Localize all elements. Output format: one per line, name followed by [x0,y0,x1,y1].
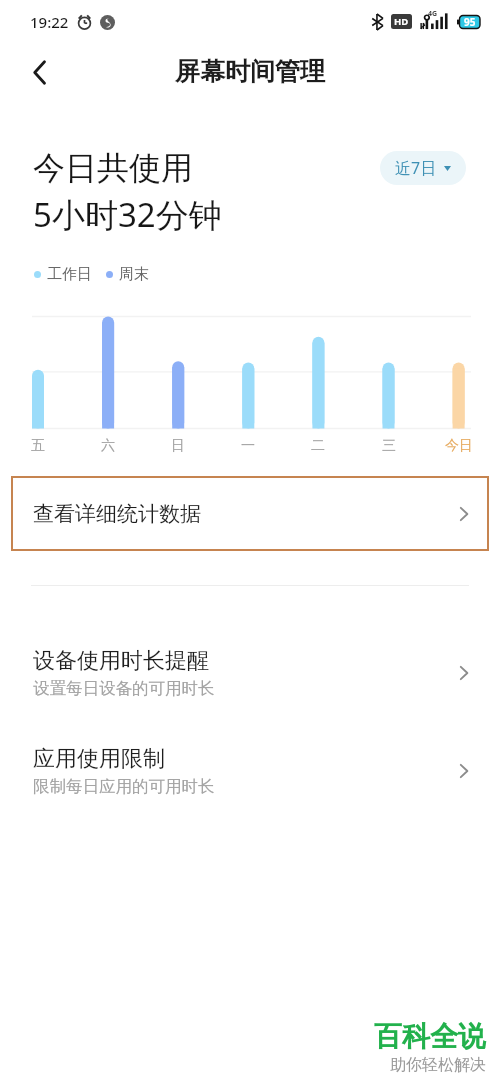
staticText: 4G [428,9,438,19]
staticText: 查看详细统计数据 [33,501,201,527]
staticText: 五 [31,437,45,455]
staticText: 百科全说 [374,1019,486,1054]
staticText: 三 [382,437,396,455]
staticText: 5小时32分钟 [33,192,222,237]
staticText: 今日 [445,437,473,455]
staticText: 近7日 [395,157,437,179]
staticText: 助你轻松解决 [390,1055,486,1075]
staticText: 一 [241,437,255,455]
button[interactable]: 查看详细统计数据 [11,476,489,551]
staticText: 应用使用限制 [33,745,165,773]
staticText: 今日共使用 [33,148,193,188]
staticText: 日 [171,437,185,455]
staticText: 95 [464,15,476,29]
staticText: HD [394,15,409,28]
button[interactable]: 设备使用时长提醒 [0,625,500,721]
staticText: 设备使用时长提醒 [33,647,209,675]
staticText: 工作日 [47,265,92,284]
staticText: 周末 [119,265,149,284]
button[interactable]: 应用使用限制 [0,723,500,819]
staticText: 六 [101,437,115,455]
staticText: 屏幕时间管理 [175,56,325,87]
button[interactable]: Back [18,50,62,94]
button[interactable]: 近7日 [380,151,466,185]
staticText: 设置每日设备的可用时长 [33,678,215,699]
staticText: 限制每日应用的可用时长 [33,776,215,797]
staticText: 二 [311,437,325,455]
staticText: 19:22 [30,12,69,32]
